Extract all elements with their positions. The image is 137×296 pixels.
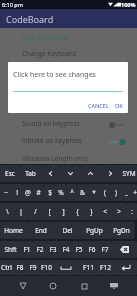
staticText: Home: [4, 226, 23, 235]
staticText: End: [35, 226, 47, 235]
button[interactable]: F6: [85, 241, 98, 258]
staticText: ): [115, 188, 117, 197]
staticText: Sound on keypress: [22, 119, 80, 128]
staticText: ]: [62, 207, 65, 216]
staticText: CANCEL: [88, 102, 109, 109]
button[interactable]: Sound on keypress toggle: [106, 119, 126, 131]
staticText: Del: [62, 226, 73, 235]
button[interactable]: Recents: [76, 278, 92, 294]
button[interactable]: }: [84, 203, 98, 220]
staticText: PgUp: [86, 226, 103, 235]
staticText: OK: [115, 102, 123, 109]
staticText: /: [34, 207, 37, 216]
button[interactable]: :: [126, 203, 137, 220]
button[interactable]: Vibration Length (ms): [0, 150, 137, 166]
button[interactable]: Home: [45, 278, 61, 294]
button[interactable]: F4: [59, 241, 72, 258]
staticText: #: [36, 188, 41, 197]
button[interactable]: !: [11, 184, 22, 201]
staticText: ~: [4, 188, 8, 197]
button[interactable]: Tab: [20, 165, 40, 182]
button[interactable]: F11: [79, 260, 97, 275]
button[interactable]: Vibrate on keypress toggle: [106, 136, 126, 148]
button[interactable]: Shft: [0, 241, 20, 258]
button[interactable]: Left: [40, 165, 60, 182]
button[interactable]: PgUp: [81, 222, 108, 239]
button[interactable]: End: [27, 222, 54, 239]
staticText: F4: [62, 245, 70, 254]
button[interactable]: {: [70, 203, 84, 220]
button[interactable]: Enter: [113, 260, 137, 275]
button[interactable]: Sound on keypress: [0, 115, 137, 131]
button[interactable]: Down: [60, 165, 80, 182]
button[interactable]: #: [33, 184, 44, 201]
staticText: &: [80, 188, 85, 197]
button[interactable]: Del: [54, 222, 81, 239]
button[interactable]: +: [132, 184, 137, 201]
staticText: @: [25, 188, 31, 197]
button[interactable]: F10: [39, 260, 53, 275]
button[interactable]: [: [42, 203, 56, 220]
staticText: F1: [23, 245, 31, 254]
button[interactable]: F5: [72, 241, 85, 258]
button[interactable]: F1: [20, 241, 33, 258]
button[interactable]: Hide keyboard: [106, 278, 122, 294]
button[interactable]: *: [88, 184, 99, 201]
button[interactable]: $: [44, 184, 55, 201]
button[interactable]: F9: [26, 260, 39, 275]
staticText: F3: [49, 245, 57, 254]
button[interactable]: %: [55, 184, 66, 201]
button[interactable]: (: [99, 184, 110, 201]
button[interactable]: \: [0, 203, 14, 220]
staticText: Ctrl: [1, 263, 12, 272]
button[interactable]: Ctrl: [0, 260, 13, 275]
staticText: F12: [100, 263, 111, 272]
button[interactable]: >: [112, 203, 126, 220]
button[interactable]: PgDn: [108, 222, 135, 239]
button[interactable]: Esc: [0, 165, 20, 182]
button[interactable]: Back: [15, 278, 31, 294]
button[interactable]: SYM: [120, 165, 137, 182]
button[interactable]: F2: [33, 241, 46, 258]
button[interactable]: Up: [80, 165, 100, 182]
button[interactable]: Backspace: [111, 241, 137, 258]
button[interactable]: Change Keyboard: [0, 45, 137, 61]
staticText: (: [104, 188, 106, 197]
button[interactable]: Space: [53, 260, 79, 275]
button[interactable]: F7: [98, 241, 111, 258]
button[interactable]: OK: [112, 100, 128, 111]
staticText: *: [92, 188, 96, 197]
button[interactable]: <: [98, 203, 112, 220]
button[interactable]: Home: [0, 222, 27, 239]
staticText: :: [131, 207, 133, 216]
button[interactable]: View Keyboard: [0, 29, 137, 45]
staticText: F8: [16, 263, 24, 272]
staticText: Tab: [25, 169, 36, 178]
staticText: Shft: [4, 245, 17, 254]
button[interactable]: ]: [56, 203, 70, 220]
staticText: $: [48, 188, 52, 197]
staticText: PgDn: [113, 226, 130, 235]
button[interactable]: F12: [97, 260, 113, 275]
button[interactable]: ): [110, 184, 121, 201]
button[interactable]: CANCEL: [85, 100, 112, 111]
button[interactable]: F8: [13, 260, 26, 275]
staticText: }: [90, 207, 93, 216]
button[interactable]: @: [22, 184, 33, 201]
button[interactable]: /: [28, 203, 42, 220]
staticText: ^: [70, 188, 74, 197]
button[interactable]: ~: [0, 184, 11, 201]
staticText: Change Keyboard: [22, 49, 77, 58]
button[interactable]: Vibrate on keypress: [0, 132, 137, 148]
button[interactable]: &: [77, 184, 88, 201]
button[interactable]: F3: [46, 241, 59, 258]
button[interactable]: ^: [66, 184, 77, 201]
staticText: F9: [29, 263, 37, 272]
staticText: F7: [101, 245, 109, 254]
staticText: F11: [83, 263, 94, 272]
button[interactable]: |: [14, 203, 28, 220]
staticText: Vibration Length (ms): [22, 154, 88, 163]
button[interactable]: Right: [100, 165, 120, 182]
button[interactable]: _: [121, 184, 132, 201]
staticText: 100%: [121, 1, 136, 8]
